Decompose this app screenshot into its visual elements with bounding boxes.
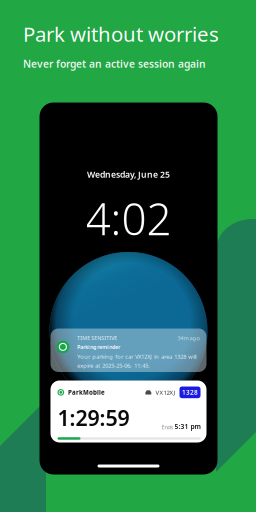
staticText: Wednesday, June 25 bbox=[87, 168, 170, 180]
staticText: expire at 2025-25-06, 11:45. bbox=[77, 361, 150, 369]
staticText: 1328 bbox=[182, 388, 198, 397]
staticText: Never forget an active session again bbox=[23, 57, 206, 71]
staticText: Your parking for car VX12XJ in area 1328… bbox=[77, 353, 196, 360]
button[interactable]: ParkMobile bbox=[50, 380, 206, 442]
staticText: 5:31 pm bbox=[174, 422, 200, 431]
staticText: TIME SENSITIVE bbox=[77, 334, 117, 342]
staticText: Parking reminder bbox=[77, 343, 120, 351]
button[interactable]: TIME SENSITIVE bbox=[50, 328, 206, 372]
staticText: ParkMobile bbox=[64, 388, 105, 397]
staticText: 4:02 bbox=[85, 188, 171, 248]
staticText: Park without worries bbox=[23, 20, 219, 48]
staticText: Ends bbox=[161, 423, 174, 431]
staticText: 1:29:59 bbox=[57, 403, 129, 432]
staticText: VX12XJ bbox=[151, 388, 175, 396]
staticText: 34m ago bbox=[177, 334, 199, 342]
